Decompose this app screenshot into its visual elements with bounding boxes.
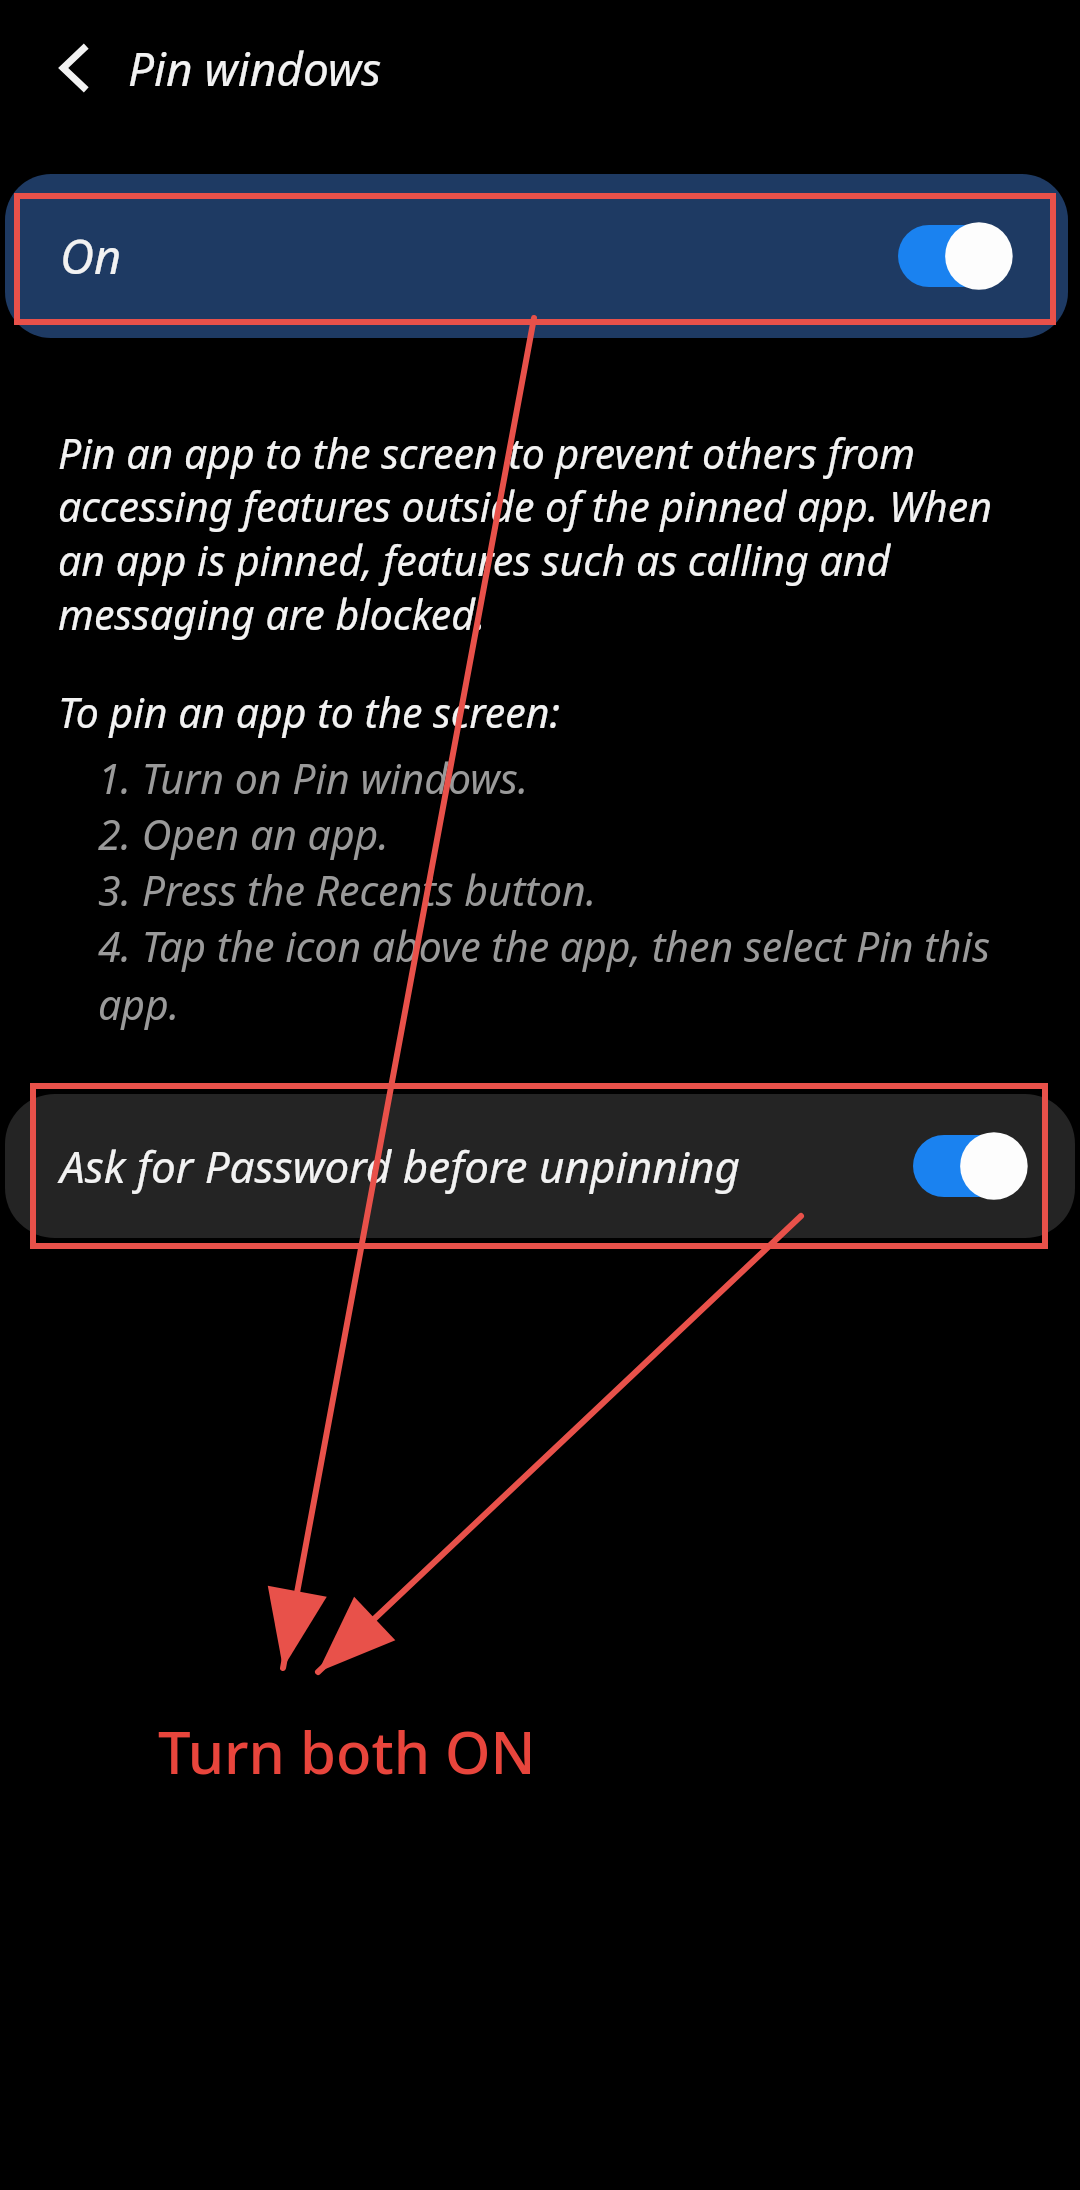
button[interactable]: Ask for Password before unpinning bbox=[5, 1094, 1075, 1238]
other: Ask for Password before unpinning on bbox=[913, 1135, 1025, 1197]
staticText: Pin an app to the screen to prevent othe… bbox=[58, 425, 1018, 642]
staticText: To pin an app to the screen: bbox=[58, 684, 561, 740]
staticText: Turn both ON bbox=[158, 1712, 536, 1791]
staticText: 1. Turn on Pin windows. bbox=[98, 750, 529, 806]
staticText: On bbox=[60, 224, 122, 288]
staticText: 3. Press the Recents button. bbox=[98, 862, 597, 918]
button[interactable]: Back bbox=[28, 22, 120, 114]
staticText: 4. Tap the icon above the app, then sele… bbox=[98, 918, 1018, 1032]
staticText: 2. Open an app. bbox=[98, 806, 389, 862]
button[interactable]: On bbox=[5, 174, 1068, 338]
other: Pin windows on bbox=[898, 225, 1010, 287]
staticText: Pin windows bbox=[128, 37, 382, 100]
staticText: Ask for Password before unpinning bbox=[60, 1136, 741, 1196]
